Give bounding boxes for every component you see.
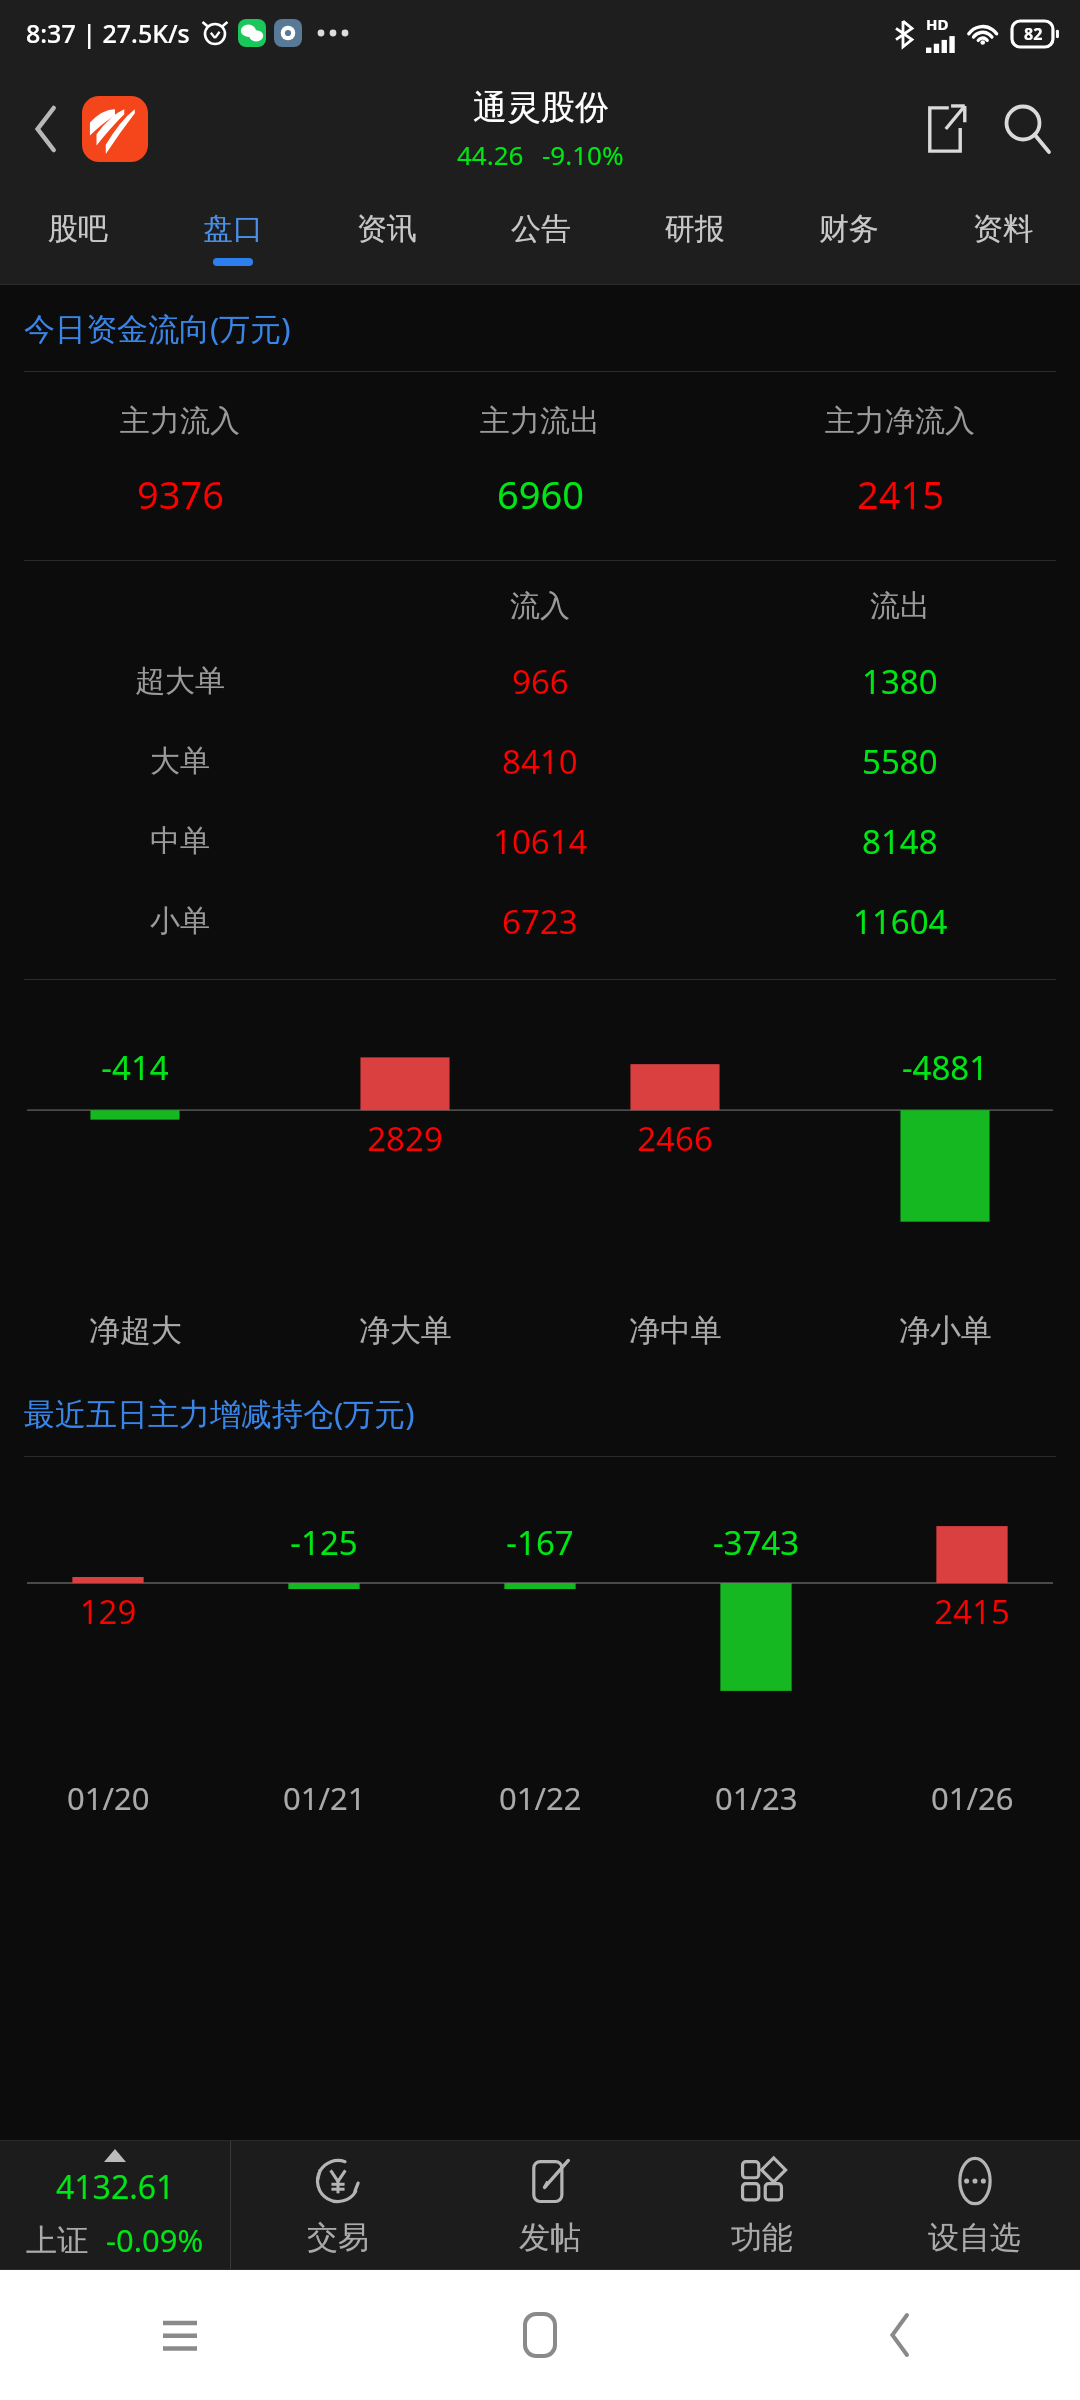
button[interactable]: 东方财富 (82, 96, 148, 162)
staticText: -9.10% (542, 137, 624, 172)
staticText: 大单 (150, 742, 210, 780)
staticText: 净超大 (89, 1311, 182, 1350)
button[interactable]: 主屏幕 (360, 2270, 720, 2400)
staticText: 2415 (857, 468, 944, 520)
staticText: 今日资金流向(万元) (24, 307, 291, 349)
button[interactable]: 主力净流入 (720, 402, 1080, 520)
staticText: 2415 (864, 1589, 1080, 1634)
staticText: 966 (512, 659, 569, 704)
staticText: 1380 (862, 659, 938, 704)
staticText: -0.09% (106, 2219, 204, 2261)
button[interactable]: 搜索 (988, 90, 1066, 168)
button[interactable]: 主力流出 (360, 402, 720, 520)
staticText: 最近五日主力增减持仓(万元) (24, 1392, 415, 1434)
staticText: 财务 (819, 210, 879, 248)
button[interactable]: 最近任务 (0, 2270, 360, 2400)
staticText: 8148 (862, 819, 938, 864)
button[interactable]: 资料 (926, 192, 1080, 284)
button[interactable]: 交易 (231, 2141, 444, 2269)
button[interactable]: 公告 (464, 192, 618, 284)
staticText: 01/21 (283, 1777, 366, 1819)
staticText: -3743 (648, 1520, 864, 1565)
button[interactable]: 小单 (0, 881, 1080, 961)
staticText: HD (926, 14, 949, 34)
staticText: 01/26 (931, 1777, 1014, 1819)
button[interactable]: 资讯 (310, 192, 464, 284)
staticText: 盘口 (203, 210, 263, 248)
staticText: 4132.61 (56, 2165, 175, 2209)
button[interactable]: 中单 (0, 801, 1080, 881)
staticText: 流入 (510, 587, 570, 625)
button[interactable]: 发帖 (444, 2141, 656, 2269)
staticText: 小单 (150, 902, 210, 940)
staticText: 主力流出 (480, 402, 600, 440)
staticText: 上证 (26, 2221, 88, 2260)
staticText: 9376 (137, 468, 224, 520)
staticText: 设自选 (928, 2218, 1021, 2257)
staticText: 01/22 (499, 1777, 582, 1819)
staticText: 净中单 (629, 1311, 722, 1350)
button[interactable]: 设自选 (868, 2141, 1080, 2269)
staticText: 通灵股份 (473, 86, 609, 129)
staticText: 净大单 (359, 1311, 452, 1350)
staticText: -4881 (810, 1045, 1080, 1090)
staticText: 5580 (862, 739, 938, 784)
staticText: 净小单 (899, 1311, 992, 1350)
button[interactable]: 财务 (772, 192, 926, 284)
staticText: 10614 (493, 819, 588, 864)
button[interactable]: 盘口 (155, 192, 310, 284)
button[interactable]: 主力流入 (0, 402, 360, 520)
button[interactable]: 分享 (906, 90, 984, 168)
staticText: 资料 (973, 210, 1033, 248)
button[interactable]: 返回 (16, 99, 76, 159)
button[interactable]: 股吧 (0, 192, 155, 284)
staticText: 股吧 (48, 210, 108, 248)
staticText: 主力净流入 (825, 402, 975, 440)
staticText: 6960 (497, 468, 584, 520)
staticText: -167 (432, 1520, 648, 1565)
button[interactable]: 返回 (720, 2270, 1080, 2400)
staticText: -414 (0, 1045, 270, 1090)
staticText: 01/20 (67, 1777, 150, 1819)
staticText: -125 (216, 1520, 432, 1565)
button[interactable]: 超大单 (0, 641, 1080, 721)
staticText: 2466 (540, 1116, 810, 1161)
staticText: 6723 (502, 899, 578, 944)
staticText: 研报 (665, 210, 725, 248)
staticText: 资讯 (357, 210, 417, 248)
staticText: 129 (0, 1589, 216, 1634)
staticText: 发帖 (519, 2218, 581, 2257)
staticText: 11604 (853, 899, 948, 944)
staticText: 中单 (150, 822, 210, 860)
staticText: 82 (1024, 23, 1043, 45)
staticText: 8410 (502, 739, 578, 784)
staticText: 主力流入 (120, 402, 240, 440)
staticText: 超大单 (135, 662, 225, 700)
button[interactable]: 大单 (0, 721, 1080, 801)
button[interactable]: 研报 (618, 192, 772, 284)
button[interactable]: 4132.61 (0, 2141, 230, 2269)
staticText: 01/23 (715, 1777, 798, 1819)
staticText: 功能 (731, 2218, 793, 2257)
button[interactable]: 功能 (656, 2141, 868, 2269)
staticText: 44.26 (457, 137, 524, 172)
staticText: 2829 (270, 1116, 540, 1161)
staticText: 流出 (870, 587, 930, 625)
staticText: 公告 (511, 210, 571, 248)
staticText: 8:37 | 27.5K/s (26, 16, 190, 50)
staticText: 交易 (307, 2218, 369, 2257)
